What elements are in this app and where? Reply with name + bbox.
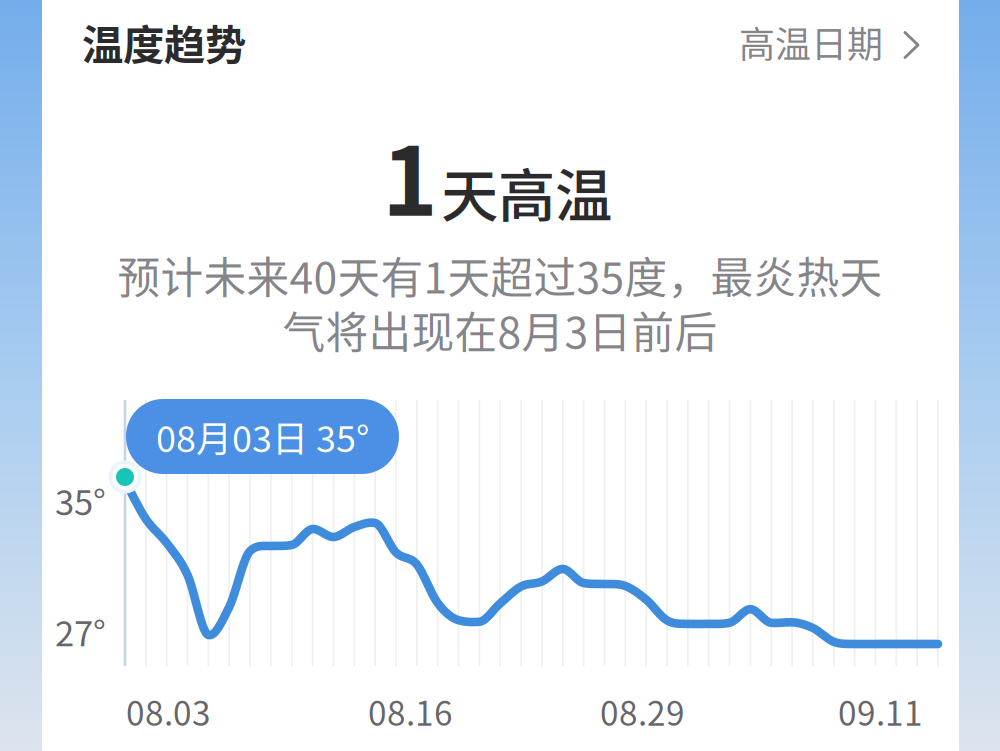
- staticText: 天高温: [441, 150, 612, 233]
- staticText: 08.29: [600, 687, 685, 735]
- staticText: 35°: [55, 475, 106, 525]
- button[interactable]: 高温日期: [739, 20, 920, 64]
- staticText: 预计未来40天有1天超过35度，最炎热天: [117, 244, 882, 306]
- staticText: 08.16: [368, 687, 453, 735]
- staticText: 1: [382, 106, 438, 243]
- staticText: 09.11: [838, 687, 923, 735]
- staticText: 08.03: [126, 687, 211, 735]
- staticText: 08月03日 35°: [156, 410, 369, 462]
- staticText: 气将出现在8月3日前后: [282, 299, 717, 361]
- staticText: 高温日期: [739, 16, 883, 68]
- staticText: 温度趋势: [82, 12, 246, 72]
- staticText: 27°: [55, 606, 106, 656]
